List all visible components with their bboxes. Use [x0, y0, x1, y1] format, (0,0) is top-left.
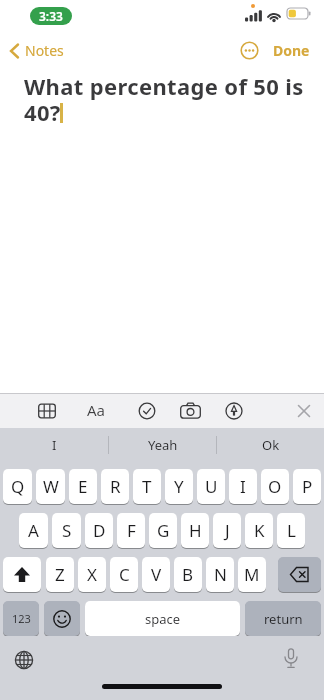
button[interactable]: Aa: [87, 400, 106, 420]
button[interactable]: N: [206, 557, 234, 592]
staticText: 123: [12, 611, 31, 626]
staticText: R: [110, 475, 121, 498]
button[interactable]: [278, 557, 321, 592]
button[interactable]: R: [101, 469, 129, 504]
staticText: Aa: [87, 400, 106, 420]
button[interactable]: Q: [3, 469, 32, 504]
staticText: Yeah: [148, 436, 178, 454]
button[interactable]: W: [36, 469, 65, 504]
button[interactable]: L: [277, 513, 305, 548]
button[interactable]: [225, 402, 243, 420]
button[interactable]: T: [133, 469, 161, 504]
button[interactable]: [14, 650, 34, 670]
button[interactable]: P: [293, 469, 321, 504]
button[interactable]: J: [213, 513, 241, 548]
staticText: Notes: [25, 41, 64, 60]
staticText: N: [214, 563, 227, 586]
staticText: Z: [55, 563, 65, 586]
staticText: S: [62, 519, 72, 542]
button[interactable]: A: [19, 513, 48, 548]
button[interactable]: Done: [273, 41, 310, 60]
button[interactable]: [240, 41, 259, 60]
button[interactable]: G: [149, 513, 177, 548]
button[interactable]: O: [261, 469, 289, 504]
staticText: Y: [174, 475, 184, 498]
staticText: D: [93, 519, 106, 542]
button[interactable]: [284, 648, 298, 669]
button[interactable]: D: [85, 513, 113, 548]
staticText: K: [254, 519, 265, 542]
staticText: U: [205, 475, 218, 498]
button[interactable]: Ok: [217, 428, 324, 462]
staticText: G: [157, 519, 170, 542]
button[interactable]: [38, 402, 56, 420]
staticText: E: [78, 475, 88, 498]
button[interactable]: I: [229, 469, 257, 504]
staticText: H: [189, 519, 202, 542]
staticText: Ok: [262, 436, 280, 454]
button[interactable]: space: [85, 601, 240, 636]
button[interactable]: Z: [46, 557, 74, 592]
button[interactable]: K: [245, 513, 273, 548]
staticText: A: [28, 519, 39, 542]
button[interactable]: Yeah: [109, 428, 216, 462]
button[interactable]: Y: [165, 469, 193, 504]
button[interactable]: U: [197, 469, 225, 504]
button[interactable]: X: [78, 557, 106, 592]
button[interactable]: S: [52, 513, 81, 548]
staticText: P: [302, 475, 313, 498]
staticText: return: [264, 610, 303, 628]
staticText: J: [225, 519, 230, 542]
staticText: X: [87, 563, 97, 586]
staticText: I: [52, 436, 57, 454]
staticText: B: [182, 563, 194, 586]
staticText: L: [287, 519, 296, 542]
staticText: What percentage of 50 is 40?: [24, 71, 304, 127]
button[interactable]: E: [69, 469, 97, 504]
staticText: T: [142, 475, 152, 498]
button[interactable]: [44, 601, 80, 636]
staticText: M: [244, 563, 260, 586]
staticText: 3:33: [39, 8, 63, 24]
staticText: I: [240, 475, 246, 498]
staticText: space: [145, 610, 181, 628]
button[interactable]: B: [174, 557, 202, 592]
staticText: C: [119, 563, 130, 586]
button[interactable]: H: [181, 513, 209, 548]
staticText: O: [268, 475, 282, 498]
button[interactable]: 3:33: [30, 7, 72, 25]
button[interactable]: [297, 404, 311, 418]
button[interactable]: Notes: [9, 41, 64, 60]
button[interactable]: [138, 402, 156, 420]
staticText: F: [127, 519, 136, 542]
button[interactable]: [3, 557, 41, 592]
button[interactable]: F: [117, 513, 145, 548]
button[interactable]: M: [238, 557, 266, 592]
staticText: Q: [11, 475, 25, 498]
button[interactable]: return: [245, 601, 321, 636]
staticText: V: [151, 563, 162, 586]
button[interactable]: C: [110, 557, 138, 592]
button[interactable]: I: [0, 428, 108, 462]
button[interactable]: [180, 402, 201, 420]
button[interactable]: V: [142, 557, 170, 592]
staticText: Done: [273, 41, 310, 60]
staticText: W: [43, 475, 59, 498]
button[interactable]: 123: [3, 601, 39, 636]
